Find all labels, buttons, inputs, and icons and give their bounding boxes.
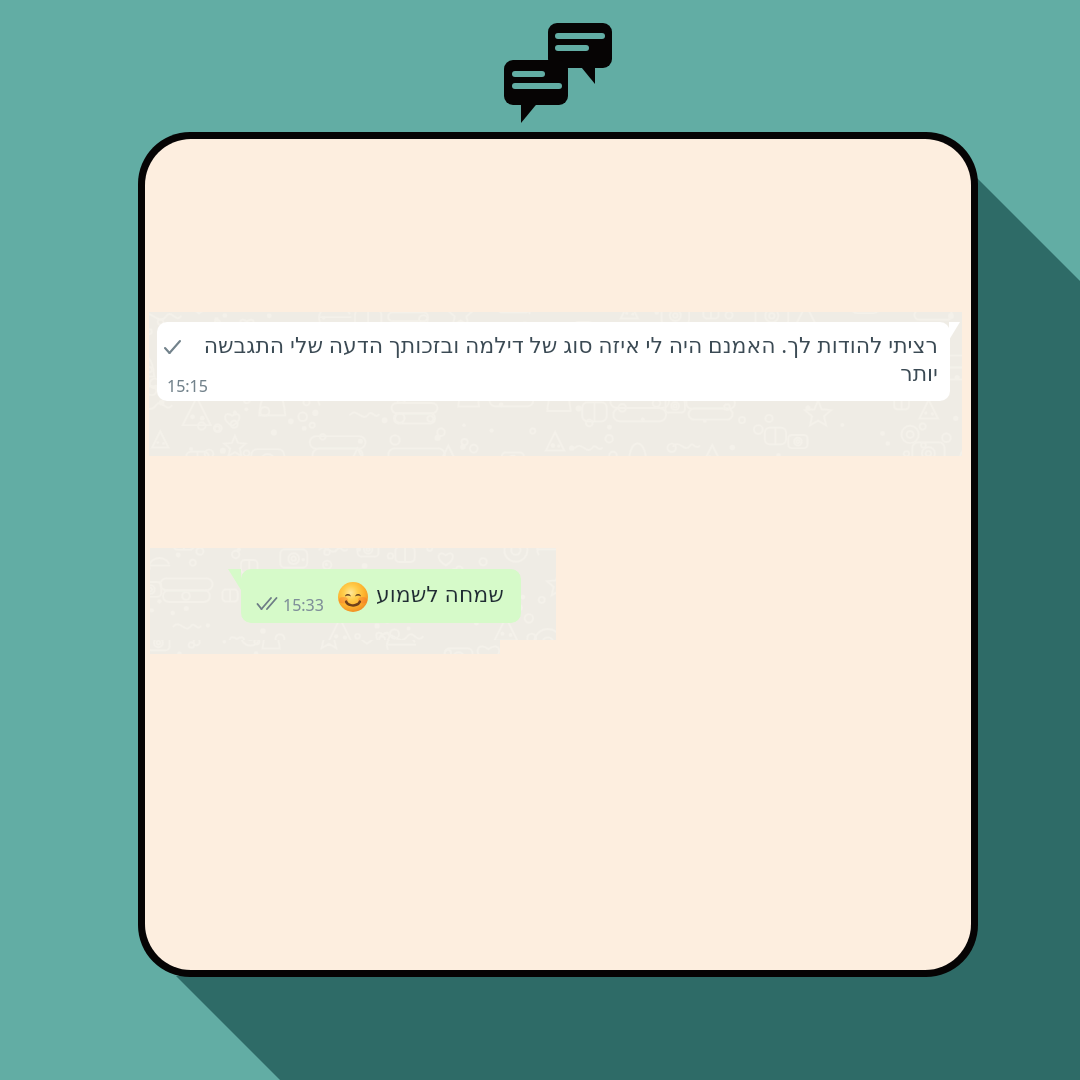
staticText: רציתי להודות לך. האמנם היה לי איזה סוג ש… [170, 329, 938, 393]
button[interactable]: רציתי להודות לך. האמנם היה לי איזה סוג ש… [145, 139, 971, 970]
staticText: 15:15 [167, 375, 208, 397]
button[interactable]: Chat messages [500, 20, 616, 126]
staticText: 15:33 [283, 594, 324, 616]
staticText: שמחה לשמוע [376, 578, 504, 608]
